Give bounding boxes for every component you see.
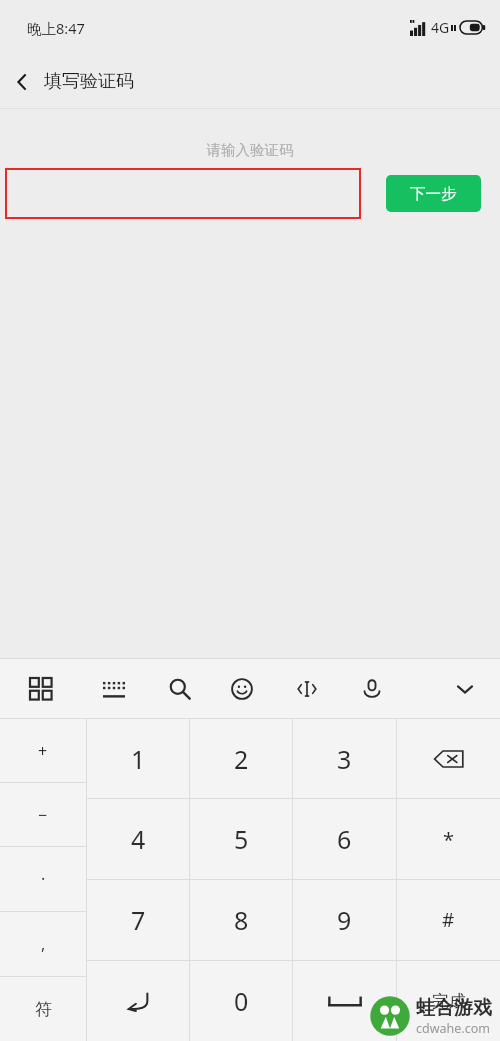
staticText: * bbox=[443, 826, 455, 853]
button[interactable]: − bbox=[0, 783, 86, 846]
staticText: 1 bbox=[131, 742, 146, 776]
button[interactable]: Voice input bbox=[351, 668, 393, 710]
button[interactable]: * bbox=[397, 799, 500, 879]
button[interactable]: 完成 bbox=[397, 961, 500, 1041]
button[interactable]: 8 bbox=[190, 880, 292, 960]
button[interactable]: 6 bbox=[293, 799, 396, 879]
button[interactable]: Space bbox=[293, 961, 396, 1041]
staticText: 蛙合游戏 bbox=[416, 996, 492, 1020]
button[interactable]: 下一步 bbox=[386, 175, 481, 212]
button[interactable]: 2 bbox=[190, 719, 292, 798]
staticText: 完成 bbox=[432, 991, 466, 1012]
button[interactable]: Move cursor bbox=[286, 668, 328, 710]
staticText: 请输入验证码 bbox=[0, 141, 500, 159]
staticText: cdwahe.com bbox=[416, 1020, 490, 1037]
staticText: 8 bbox=[234, 903, 249, 937]
staticText: 4 bbox=[131, 822, 146, 856]
staticText: + bbox=[38, 740, 48, 762]
button[interactable]: · bbox=[0, 847, 86, 911]
staticText: − bbox=[38, 804, 48, 826]
staticText: 符 bbox=[35, 999, 52, 1020]
staticText: , bbox=[41, 933, 46, 955]
button[interactable]: Back bbox=[0, 60, 44, 104]
staticText: · bbox=[41, 868, 46, 890]
staticText: 6 bbox=[337, 822, 352, 856]
button[interactable]: 3 bbox=[293, 719, 396, 798]
staticText: 晚上8:47 bbox=[27, 18, 85, 38]
button[interactable]: + bbox=[0, 719, 86, 782]
button[interactable]: Search bbox=[159, 668, 201, 710]
staticText: # bbox=[442, 907, 455, 933]
button[interactable]: 7 bbox=[87, 880, 189, 960]
button[interactable]: 1 bbox=[87, 719, 189, 798]
button[interactable]: 符 bbox=[0, 977, 86, 1041]
button[interactable]: Hide keyboard bbox=[444, 668, 486, 710]
button[interactable]: 4 bbox=[87, 799, 189, 879]
button[interactable]: 0 bbox=[190, 961, 292, 1041]
button[interactable]: Emoji bbox=[221, 668, 263, 710]
button[interactable]: 5 bbox=[190, 799, 292, 879]
staticText: 0 bbox=[234, 984, 249, 1018]
button[interactable]: Switch keyboard bbox=[93, 668, 135, 710]
button[interactable] bbox=[5, 168, 361, 219]
staticText: 填写验证码 bbox=[44, 70, 134, 93]
button[interactable]: 9 bbox=[293, 880, 396, 960]
staticText: 2 bbox=[234, 742, 249, 776]
button[interactable]: , bbox=[0, 912, 86, 976]
button[interactable]: Delete bbox=[397, 719, 500, 798]
button[interactable]: # bbox=[397, 880, 500, 960]
staticText: 7 bbox=[131, 903, 146, 937]
staticText: 9 bbox=[337, 903, 352, 937]
staticText: 3 bbox=[337, 742, 352, 776]
button[interactable]: Keyboard layouts bbox=[20, 668, 62, 710]
button[interactable]: Return bbox=[87, 961, 189, 1041]
staticText: 下一步 bbox=[410, 184, 457, 204]
staticText: 5 bbox=[234, 822, 249, 856]
staticText: 4G bbox=[431, 18, 450, 37]
